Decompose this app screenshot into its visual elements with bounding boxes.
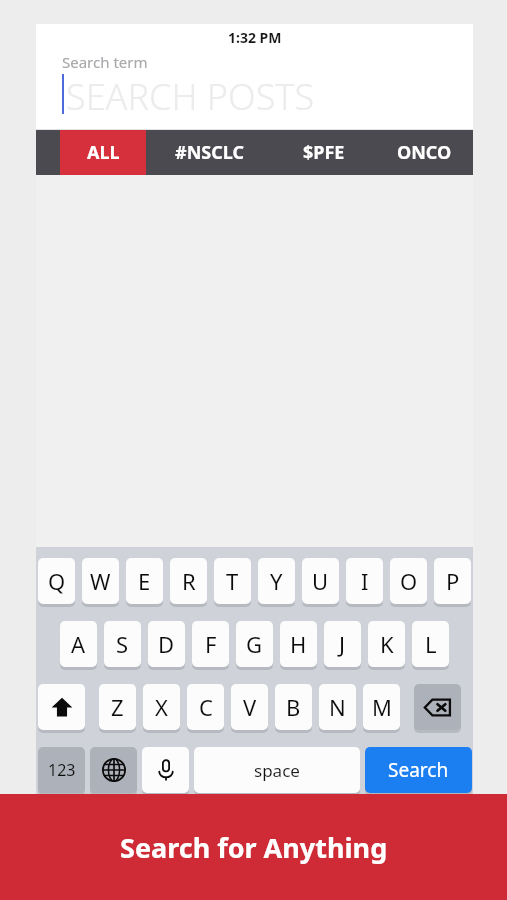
- staticText: M: [372, 692, 392, 722]
- button[interactable]: Q: [38, 558, 75, 604]
- staticText: U: [312, 566, 329, 596]
- button[interactable]: Shift: [38, 684, 85, 730]
- button[interactable]: S: [104, 621, 141, 667]
- button[interactable]: K: [368, 621, 405, 667]
- staticText: H: [290, 629, 307, 659]
- button[interactable]: space: [194, 747, 360, 793]
- button[interactable]: J: [324, 621, 361, 667]
- staticText: T: [226, 566, 239, 596]
- button[interactable]: M: [363, 684, 400, 730]
- button[interactable]: T: [214, 558, 251, 604]
- staticText: X: [155, 692, 168, 722]
- button[interactable]: B: [275, 684, 312, 730]
- staticText: ONCO: [397, 140, 452, 165]
- staticText: Y: [270, 566, 283, 596]
- staticText: I: [361, 566, 369, 596]
- staticText: #NSCLC: [175, 140, 244, 165]
- staticText: K: [380, 629, 394, 659]
- staticText: Search: [388, 757, 449, 783]
- staticText: G: [246, 629, 263, 659]
- staticText: 123: [48, 759, 76, 781]
- button[interactable]: Change keyboard: [90, 747, 137, 793]
- staticText: A: [71, 629, 86, 659]
- button[interactable]: I: [346, 558, 383, 604]
- staticText: W: [90, 566, 111, 596]
- button[interactable]: Search for Anything: [0, 794, 507, 900]
- button[interactable]: ALL: [60, 130, 146, 175]
- staticText: Search term: [62, 52, 148, 72]
- staticText: 1:32 PM: [228, 28, 282, 47]
- button[interactable]: Backspace: [414, 684, 461, 730]
- button[interactable]: O: [390, 558, 427, 604]
- button[interactable]: $PFE: [272, 130, 376, 175]
- button[interactable]: H: [280, 621, 317, 667]
- button[interactable]: L: [412, 621, 449, 667]
- staticText: F: [205, 629, 217, 659]
- button[interactable]: Z: [99, 684, 136, 730]
- staticText: C: [199, 692, 213, 722]
- button[interactable]: R: [170, 558, 207, 604]
- staticText: E: [138, 566, 151, 596]
- staticText: Z: [111, 692, 124, 722]
- button[interactable]: #NSCLC: [146, 130, 272, 175]
- staticText: Q: [48, 566, 66, 596]
- button[interactable]: W: [82, 558, 119, 604]
- button[interactable]: Search: [365, 747, 472, 793]
- staticText: V: [243, 692, 257, 722]
- staticText: O: [400, 566, 418, 596]
- button[interactable]: P: [434, 558, 471, 604]
- button[interactable]: C: [187, 684, 224, 730]
- staticText: N: [329, 692, 346, 722]
- staticText: D: [158, 629, 175, 659]
- staticText: space: [254, 759, 300, 782]
- button[interactable]: 123: [38, 747, 85, 793]
- button[interactable]: N: [319, 684, 356, 730]
- button[interactable]: E: [126, 558, 163, 604]
- staticText: R: [182, 566, 196, 596]
- staticText: ALL: [87, 140, 120, 165]
- staticText: L: [425, 629, 437, 659]
- staticText: J: [339, 629, 346, 659]
- button[interactable]: Y: [258, 558, 295, 604]
- button[interactable]: F: [192, 621, 229, 667]
- staticText: P: [446, 566, 460, 596]
- staticText: S: [116, 629, 129, 659]
- staticText: $PFE: [303, 140, 345, 165]
- button[interactable]: Voice input: [142, 747, 189, 793]
- button[interactable]: ONCO: [376, 130, 473, 175]
- button[interactable]: V: [231, 684, 268, 730]
- button[interactable]: A: [60, 621, 97, 667]
- staticText: B: [286, 692, 301, 722]
- button[interactable]: X: [143, 684, 180, 730]
- staticText: SEARCH POSTS: [66, 72, 315, 121]
- button[interactable]: U: [302, 558, 339, 604]
- button[interactable]: D: [148, 621, 185, 667]
- button[interactable]: G: [236, 621, 273, 667]
- staticText: Search for Anything: [120, 829, 388, 866]
